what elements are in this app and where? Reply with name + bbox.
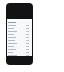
button[interactable]: [7, 48, 32, 51]
button[interactable]: [7, 33, 32, 36]
button[interactable]: [7, 30, 32, 33]
button[interactable]: [7, 42, 32, 45]
button[interactable]: [7, 27, 32, 30]
button[interactable]: [7, 45, 32, 48]
button[interactable]: [7, 21, 32, 24]
button[interactable]: [7, 51, 32, 54]
button[interactable]: [7, 54, 32, 56]
button[interactable]: [7, 39, 32, 42]
button[interactable]: [7, 24, 32, 27]
other: Phone preview: [6, 3, 33, 65]
button[interactable]: [7, 36, 32, 39]
